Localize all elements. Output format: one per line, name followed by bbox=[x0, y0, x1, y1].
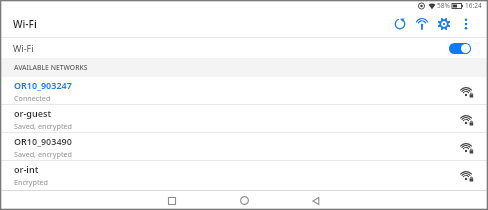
button[interactable]: or-int bbox=[0, 161, 488, 188]
staticText: or-int bbox=[14, 163, 39, 175]
staticText: Encrypted bbox=[14, 177, 49, 187]
staticText: or-guest bbox=[14, 107, 52, 119]
staticText: 58% bbox=[437, 1, 450, 10]
button[interactable]: or-guest bbox=[0, 105, 488, 132]
button[interactable] bbox=[411, 13, 433, 35]
button[interactable] bbox=[296, 191, 336, 210]
button[interactable] bbox=[433, 13, 455, 35]
button[interactable]: Wi-Fi bbox=[0, 38, 488, 58]
button[interactable] bbox=[152, 191, 192, 210]
staticText: Saved, encrypted bbox=[14, 149, 72, 159]
button[interactable]: OR10_903247 bbox=[0, 77, 488, 104]
button[interactable] bbox=[455, 13, 477, 35]
staticText: Wi-Fi bbox=[13, 42, 34, 54]
button[interactable] bbox=[224, 191, 264, 210]
staticText: Wi-Fi bbox=[13, 17, 37, 31]
staticText: Saved, encrypted bbox=[14, 121, 72, 131]
button[interactable] bbox=[449, 43, 471, 54]
button[interactable] bbox=[389, 13, 411, 35]
staticText: AVAILABLE NETWORKS bbox=[14, 63, 88, 72]
staticText: OR10_903490 bbox=[14, 135, 72, 147]
staticText: OR10_903247 bbox=[14, 79, 72, 91]
staticText: 16:24 bbox=[465, 1, 482, 10]
staticText: Connected bbox=[14, 93, 51, 103]
button[interactable]: OR10_903490 bbox=[0, 133, 488, 160]
